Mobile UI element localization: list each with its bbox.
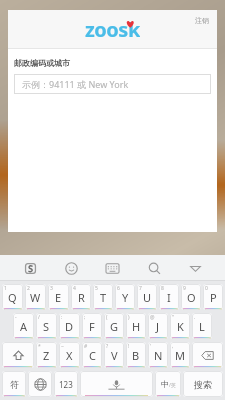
button[interactable]: U bbox=[137, 284, 157, 310]
staticText: J bbox=[156, 319, 160, 334]
staticText: 0 bbox=[205, 285, 208, 292]
staticText: O bbox=[187, 290, 196, 305]
staticText: S bbox=[43, 319, 50, 334]
staticText: 符 bbox=[10, 379, 19, 390]
staticText: B bbox=[132, 348, 140, 363]
button[interactable]: S bbox=[36, 313, 57, 339]
staticText: / bbox=[38, 314, 40, 321]
button[interactable]: N bbox=[148, 342, 168, 368]
button[interactable]: C bbox=[82, 342, 102, 368]
staticText: R bbox=[78, 290, 85, 305]
staticText: K bbox=[177, 319, 184, 334]
button[interactable]: 搜索 bbox=[183, 371, 223, 397]
staticText: C bbox=[89, 348, 96, 363]
staticText: 9 bbox=[183, 285, 186, 292]
button[interactable]: Keyboard layout bbox=[101, 257, 123, 279]
staticText: I bbox=[167, 290, 171, 305]
button[interactable]: O bbox=[181, 284, 201, 310]
staticText: 搜索 bbox=[194, 379, 212, 390]
staticText: P bbox=[210, 290, 217, 305]
staticText: 8 bbox=[161, 285, 164, 292]
button[interactable]: V bbox=[104, 342, 124, 368]
button[interactable]: P bbox=[203, 284, 223, 310]
staticText: . bbox=[194, 314, 196, 321]
button[interactable]: J bbox=[148, 313, 168, 339]
button[interactable]: 示例：94111 或 New York bbox=[14, 74, 211, 94]
button[interactable]: Y bbox=[115, 284, 135, 310]
button[interactable]: 123 bbox=[54, 371, 78, 397]
staticText: : bbox=[61, 314, 63, 321]
button[interactable]: Sogou input bbox=[19, 257, 41, 279]
button[interactable]: H bbox=[126, 313, 146, 339]
staticText: 1 bbox=[4, 285, 7, 292]
staticText: G bbox=[110, 319, 119, 334]
button[interactable]: Change language bbox=[28, 371, 52, 397]
button[interactable]: 中 bbox=[155, 371, 181, 397]
button[interactable]: W bbox=[25, 284, 46, 310]
button[interactable]: Space, voice input bbox=[80, 371, 153, 397]
button[interactable]: 注销 bbox=[187, 10, 217, 31]
staticText: 示例：94111 或 New York bbox=[22, 78, 129, 90]
button[interactable]: L bbox=[192, 313, 212, 339]
staticText: ' bbox=[150, 343, 152, 350]
staticText: 4 bbox=[73, 285, 76, 292]
staticText: Q bbox=[8, 290, 17, 305]
staticText: - bbox=[15, 314, 17, 321]
button[interactable]: I bbox=[159, 284, 179, 310]
staticText: 5 bbox=[95, 285, 98, 292]
staticText: T bbox=[100, 290, 107, 305]
staticText: * bbox=[38, 343, 41, 350]
staticText: D bbox=[65, 319, 74, 334]
staticText: ! bbox=[128, 343, 130, 350]
staticText: X bbox=[66, 348, 73, 363]
button[interactable]: Emoji bbox=[60, 257, 82, 279]
staticText: V bbox=[111, 348, 118, 363]
button[interactable]: 符 bbox=[2, 371, 26, 397]
button[interactable]: B bbox=[126, 342, 146, 368]
staticText: A bbox=[20, 319, 28, 334]
staticText: ) bbox=[128, 314, 130, 321]
button[interactable]: F bbox=[82, 313, 102, 339]
staticText: E bbox=[55, 290, 62, 305]
staticText: 7 bbox=[139, 285, 142, 292]
button[interactable]: G bbox=[104, 313, 124, 339]
button[interactable]: M bbox=[170, 342, 190, 368]
button[interactable]: K bbox=[170, 313, 190, 339]
staticText: Y bbox=[122, 290, 129, 305]
staticText: zoosk bbox=[85, 16, 140, 42]
staticText: H bbox=[132, 319, 141, 334]
staticText: N bbox=[154, 348, 163, 363]
button[interactable]: A bbox=[13, 313, 34, 339]
button[interactable]: E bbox=[48, 284, 69, 310]
staticText: # bbox=[84, 343, 88, 350]
staticText: /英 bbox=[169, 382, 176, 389]
button[interactable]: R bbox=[71, 284, 91, 310]
staticText: 6 bbox=[117, 285, 120, 292]
staticText: Z bbox=[43, 348, 50, 363]
staticText: ( bbox=[106, 314, 108, 321]
button[interactable]: Shift bbox=[2, 342, 34, 368]
staticText: U bbox=[143, 290, 152, 305]
button[interactable]: X bbox=[59, 342, 80, 368]
staticText: ? bbox=[106, 343, 109, 350]
button[interactable]: Search bbox=[143, 257, 165, 279]
staticText: , bbox=[172, 343, 174, 350]
staticText: 2 bbox=[27, 285, 30, 292]
staticText: F bbox=[89, 319, 95, 334]
staticText: 123 bbox=[59, 379, 73, 390]
staticText: " bbox=[172, 314, 175, 321]
button[interactable]: T bbox=[93, 284, 113, 310]
button[interactable]: Q bbox=[2, 284, 23, 310]
staticText: 邮政编码或城市 bbox=[14, 58, 70, 68]
button[interactable]: Z bbox=[36, 342, 57, 368]
staticText: @ bbox=[150, 314, 155, 321]
staticText: W bbox=[30, 290, 41, 305]
staticText: M bbox=[175, 348, 185, 363]
button[interactable]: Backspace bbox=[192, 342, 223, 368]
staticText: 中 bbox=[161, 379, 169, 389]
button[interactable]: D bbox=[59, 313, 80, 339]
staticText: ~ bbox=[61, 343, 64, 350]
staticText: ; bbox=[84, 314, 86, 321]
button[interactable]: Hide keyboard bbox=[184, 257, 206, 279]
staticText: L bbox=[199, 319, 205, 334]
